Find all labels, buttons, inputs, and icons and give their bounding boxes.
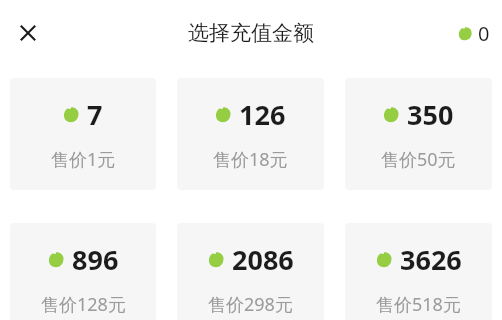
staticText: 售价298元 xyxy=(208,292,293,317)
button[interactable]: Close xyxy=(8,13,48,53)
staticText: 选择充值金额 xyxy=(188,20,314,46)
staticText: 售价18元 xyxy=(213,147,288,172)
staticText: 2086 xyxy=(232,241,294,278)
button[interactable]: 0 xyxy=(458,20,490,47)
staticText: 售价518元 xyxy=(376,292,461,317)
button[interactable]: 3626 xyxy=(345,223,492,320)
button[interactable]: 126 xyxy=(177,78,324,190)
staticText: 0 xyxy=(478,20,490,47)
staticText: 售价1元 xyxy=(51,147,116,172)
button[interactable]: 7 xyxy=(10,78,156,190)
button[interactable]: 2086 xyxy=(177,223,324,320)
button[interactable]: 350 xyxy=(345,78,492,190)
staticText: 126 xyxy=(239,96,286,133)
button[interactable]: 896 xyxy=(10,223,156,320)
staticText: 3626 xyxy=(400,241,462,278)
staticText: 7 xyxy=(87,96,103,133)
staticText: 售价128元 xyxy=(41,292,126,317)
staticText: 350 xyxy=(407,96,454,133)
staticText: 896 xyxy=(72,241,119,278)
staticText: 售价50元 xyxy=(381,147,456,172)
